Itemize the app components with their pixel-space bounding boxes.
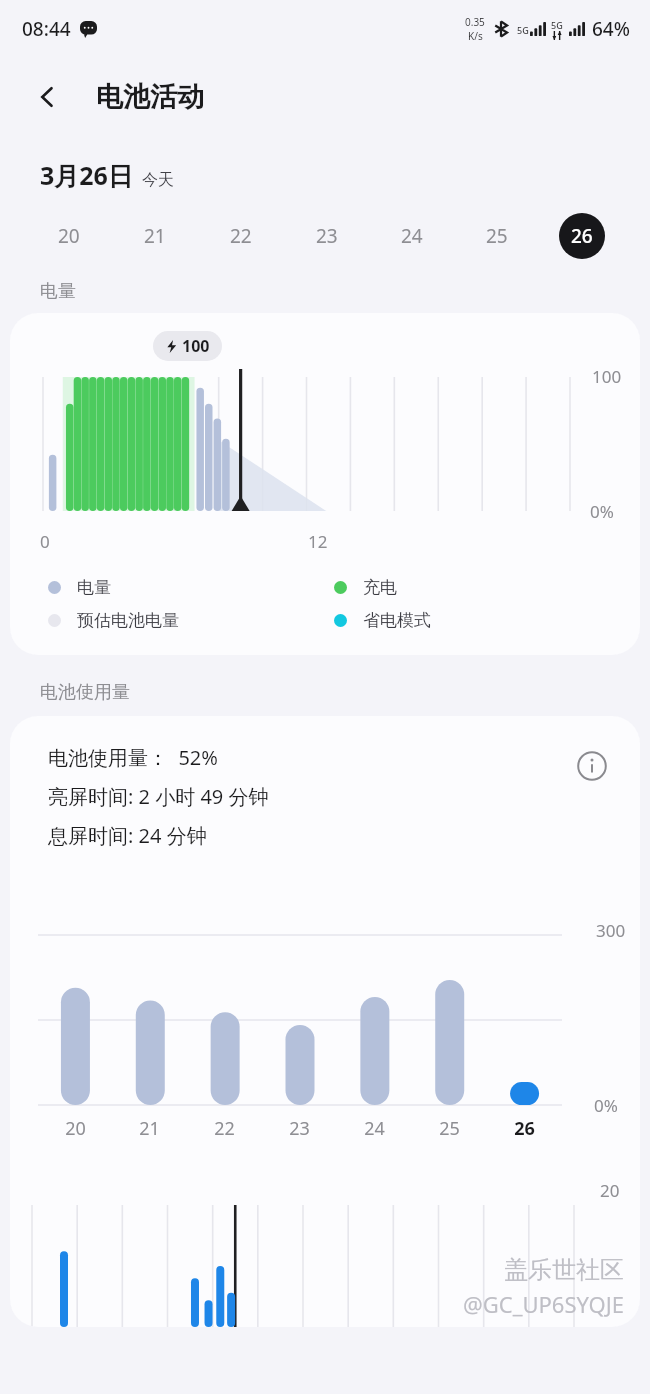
button[interactable]: 26: [539, 210, 624, 262]
button[interactable]: Back: [26, 75, 70, 119]
staticText: 21: [139, 1116, 160, 1141]
staticText: 0%: [594, 1094, 618, 1117]
staticText: 充电: [363, 577, 397, 598]
staticText: 22: [214, 1116, 235, 1141]
button[interactable]: 电池使用量： 52%: [10, 716, 640, 1327]
staticText: 0.35: [465, 15, 485, 29]
staticText: 23: [289, 1116, 310, 1141]
button[interactable]: 23: [284, 210, 369, 262]
button[interactable]: 22: [198, 210, 284, 262]
staticText: 今天: [142, 170, 174, 190]
staticText: 0: [40, 530, 50, 553]
staticText: 电量: [40, 280, 76, 303]
staticText: 5G: [551, 19, 563, 31]
button[interactable]: Information: [570, 744, 614, 788]
button[interactable]: 20: [26, 210, 112, 262]
staticText: 0%: [590, 500, 614, 523]
staticText: 省电模式: [363, 610, 431, 631]
button[interactable]: 100: [10, 313, 640, 655]
staticText: 25: [439, 1116, 460, 1141]
staticText: 电量: [77, 577, 111, 598]
staticText: 电池使用量: [40, 681, 130, 704]
staticText: 20: [58, 223, 80, 249]
staticText: 电池使用量： 52%: [48, 744, 218, 771]
staticText: 20: [65, 1116, 86, 1141]
staticText: 息屏时间: 24 分钟: [48, 822, 207, 849]
staticText: 盖乐世社区: [504, 1255, 624, 1285]
staticText: 300: [596, 919, 626, 942]
staticText: 预估电池电量: [77, 610, 179, 631]
button[interactable]: 21: [112, 210, 198, 262]
staticText: 26: [571, 223, 593, 249]
staticText: 21: [144, 223, 166, 249]
button[interactable]: 24: [369, 210, 454, 262]
staticText: 电池活动: [96, 80, 204, 114]
staticText: 08:44: [22, 16, 71, 42]
staticText: 100: [592, 365, 622, 388]
staticText: 25: [486, 223, 508, 249]
staticText: 23: [316, 223, 338, 249]
staticText: 5G: [517, 24, 529, 36]
staticText: 64%: [592, 16, 630, 42]
staticText: 12: [308, 530, 328, 553]
staticText: 亮屏时间: 2 小时 49 分钟: [48, 783, 269, 810]
staticText: 24: [401, 223, 423, 249]
staticText: 22: [230, 223, 252, 249]
staticText: 24: [364, 1116, 385, 1141]
staticText: 20: [600, 1179, 620, 1202]
staticText: @GC_UP6SYQJE: [463, 1289, 624, 1319]
staticText: K/s: [468, 29, 483, 43]
staticText: 100: [182, 335, 210, 357]
button[interactable]: 25: [454, 210, 539, 262]
staticText: 3月26日: [40, 158, 133, 192]
staticText: 26: [514, 1116, 535, 1141]
